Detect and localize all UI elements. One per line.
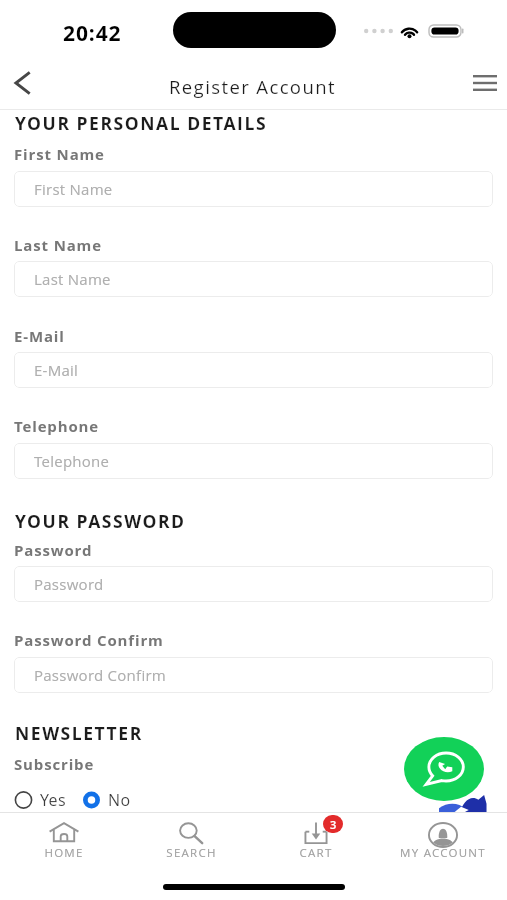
staticText: YOUR PERSONAL DETAILS (15, 111, 268, 135)
staticText: NEWSLETTER (15, 721, 143, 745)
staticText: First Name (14, 144, 105, 164)
button[interactable]: E-Mail (14, 352, 493, 388)
button[interactable]: Password (14, 566, 493, 602)
staticText: Password Confirm (14, 630, 164, 650)
staticText: No (108, 789, 131, 811)
button[interactable]: HOME (1, 813, 127, 866)
staticText: CART (299, 845, 333, 861)
button[interactable]: CART (253, 813, 379, 866)
button[interactable]: Back (0, 61, 44, 105)
staticText: HOME (44, 845, 84, 861)
button[interactable]: No (82, 789, 131, 811)
staticText: YOUR PASSWORD (15, 509, 186, 533)
button[interactable]: Yes (14, 789, 66, 811)
staticText: Last Name (34, 269, 111, 289)
staticText: Register Account (169, 74, 336, 99)
staticText: Password (14, 540, 93, 560)
staticText: Password Confirm (34, 665, 167, 685)
staticText: Last Name (14, 235, 102, 255)
button[interactable]: SEARCH (128, 813, 254, 866)
button[interactable]: First Name (14, 171, 493, 207)
staticText: SEARCH (166, 845, 217, 861)
staticText: Telephone (34, 451, 110, 471)
button[interactable]: Menu (463, 61, 507, 105)
staticText: E-Mail (14, 326, 65, 346)
staticText: E-Mail (34, 360, 79, 380)
button[interactable]: Telephone (14, 443, 493, 479)
button[interactable]: MY ACCOUNT (380, 813, 506, 866)
staticText: Password (34, 574, 104, 594)
staticText: Subscribe (14, 754, 95, 774)
staticText: Telephone (14, 416, 99, 436)
button[interactable]: Chat on WhatsApp (404, 737, 484, 801)
button[interactable]: Last Name (14, 261, 493, 297)
button[interactable]: Password Confirm (14, 657, 493, 693)
staticText: Yes (40, 789, 66, 811)
staticText: MY ACCOUNT (400, 845, 486, 861)
staticText: 20:42 (63, 19, 122, 48)
staticText: 3 (330, 817, 337, 832)
staticText: First Name (34, 179, 113, 199)
